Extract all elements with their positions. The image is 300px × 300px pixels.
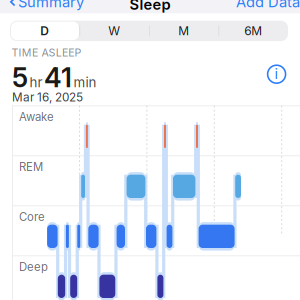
staticText: Deep <box>19 260 48 274</box>
staticText: hr <box>29 74 42 90</box>
staticText: 6M <box>244 24 262 38</box>
staticText: M <box>178 24 189 38</box>
staticText: Core <box>19 210 45 224</box>
staticText: Mar 16, 2025 <box>12 90 83 104</box>
staticText: D <box>40 24 49 38</box>
staticText: min <box>73 74 96 90</box>
staticText: 41 <box>44 61 72 94</box>
staticText: Sleep <box>129 0 170 13</box>
button[interactable]: Summary <box>5 0 89 8</box>
staticText: 5 <box>12 61 28 94</box>
staticText: Summary <box>18 0 84 11</box>
staticText: Add Data <box>236 0 300 11</box>
button[interactable]: W <box>79 21 149 41</box>
staticText: Awake <box>19 110 54 124</box>
staticText: i <box>275 65 279 82</box>
staticText: TIME ASLEEP <box>11 46 81 59</box>
button[interactable]: D <box>10 21 79 41</box>
button[interactable]: M <box>149 21 218 41</box>
button[interactable]: 6M <box>218 21 288 41</box>
staticText: W <box>108 24 120 38</box>
button[interactable]: About Time Asleep <box>264 61 290 87</box>
staticText: REM <box>19 160 43 174</box>
button[interactable]: Add Data <box>231 0 300 8</box>
